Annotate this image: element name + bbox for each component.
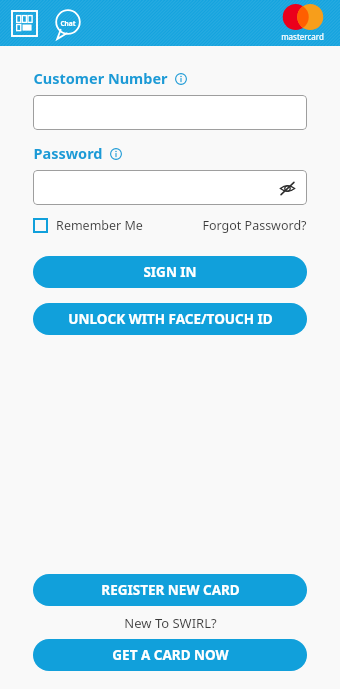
staticText: UNLOCK WITH FACE/TOUCH ID — [68, 310, 273, 328]
button[interactable]: SIGN IN — [33, 256, 307, 288]
button[interactable]: UNLOCK WITH FACE/TOUCH ID — [33, 303, 307, 335]
button[interactable]: REGISTER NEW CARD — [33, 574, 307, 606]
button[interactable]: Show password — [277, 178, 297, 198]
button[interactable]: Info about Customer Number — [174, 72, 187, 85]
staticText: Chat — [60, 19, 76, 28]
button[interactable]: SWIRL home — [9, 8, 39, 38]
button[interactable]: Chat — [53, 8, 83, 38]
button[interactable]: GET A CARD NOW — [33, 639, 307, 671]
button[interactable]: Show password — [33, 170, 307, 205]
staticText: mastercard — [281, 31, 324, 42]
button[interactable]: Forgot Password? — [202, 217, 307, 234]
staticText: Remember Me — [56, 217, 143, 234]
button[interactable] — [33, 95, 307, 130]
button[interactable]: Info about Password — [109, 147, 122, 160]
button[interactable]: Remember Me — [33, 217, 143, 234]
staticText: REGISTER NEW CARD — [101, 581, 240, 599]
staticText: SIGN IN — [143, 263, 197, 281]
staticText: Forgot Password? — [202, 217, 307, 234]
staticText: GET A CARD NOW — [112, 646, 229, 664]
staticText: Password — [33, 143, 103, 163]
staticText: Customer Number — [33, 68, 168, 88]
staticText: New To SWIRL? — [124, 614, 217, 632]
